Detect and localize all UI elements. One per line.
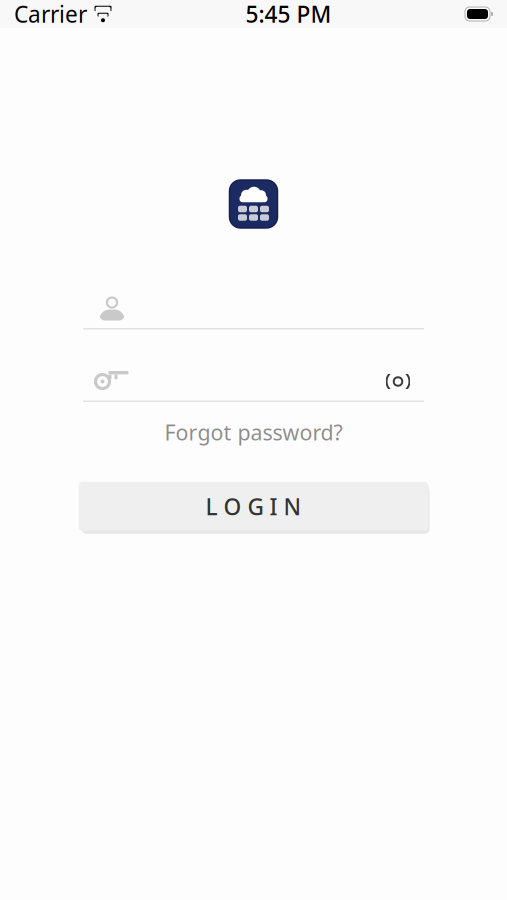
staticText: L O G I N — [205, 491, 301, 521]
button[interactable]: L O G I N — [75, 477, 431, 535]
button[interactable]: Forgot password? — [152, 410, 354, 454]
staticText: 5:45 PM — [245, 0, 331, 29]
staticText: Carrier — [14, 0, 87, 29]
button[interactable]: Show password — [381, 366, 424, 396]
staticText: Forgot password? — [164, 418, 342, 446]
